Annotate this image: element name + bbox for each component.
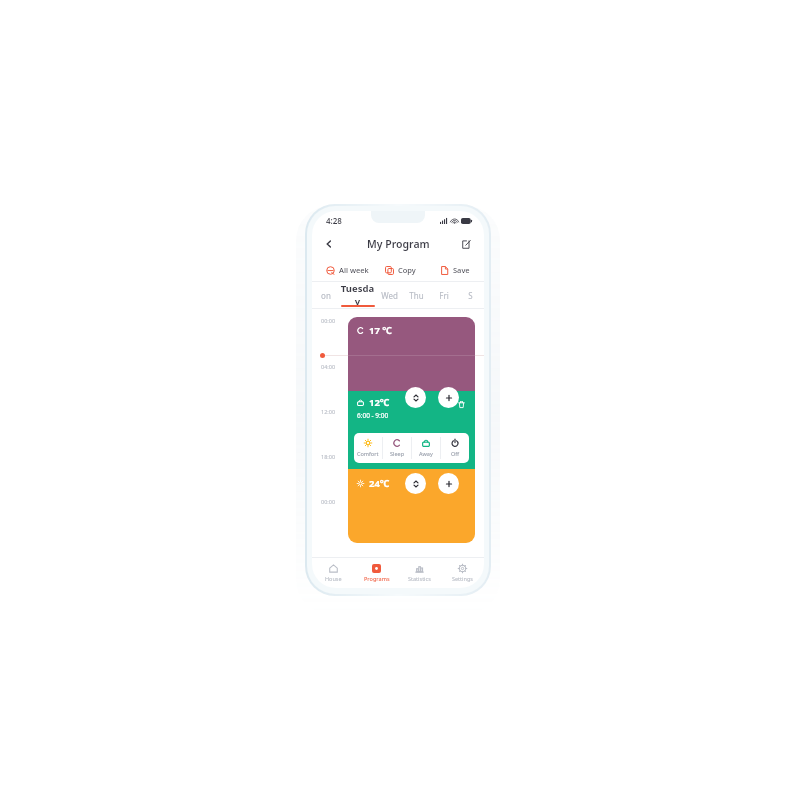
button[interactable]: Tuesday xyxy=(339,282,376,308)
button[interactable]: Programs xyxy=(355,558,398,588)
button[interactable]: on xyxy=(312,282,339,308)
button[interactable]: Adjust time xyxy=(405,473,426,494)
staticText: 12℃ xyxy=(369,396,390,409)
staticText: 18:00 xyxy=(321,453,336,460)
staticText: My Program xyxy=(367,237,430,251)
staticText: Sleep xyxy=(390,450,405,457)
staticText: 04:00 xyxy=(321,363,336,370)
button[interactable]: Add period xyxy=(438,473,459,494)
staticText: 17 ℃ xyxy=(369,324,392,337)
button[interactable]: Thu xyxy=(403,282,430,308)
button[interactable]: Away xyxy=(412,433,440,463)
staticText: Fri xyxy=(439,290,449,301)
button[interactable]: Comfort xyxy=(354,433,382,463)
staticText: Away xyxy=(419,450,433,457)
button[interactable]: All week xyxy=(324,263,371,277)
staticText: S xyxy=(468,290,473,301)
button[interactable]: Settings xyxy=(441,558,484,588)
button[interactable]: Wed xyxy=(376,282,403,308)
staticText: Statistics xyxy=(408,575,431,582)
staticText: 00:00 xyxy=(321,498,336,505)
button[interactable]: House xyxy=(312,558,355,588)
staticText: Settings xyxy=(452,575,473,582)
staticText: 6:00 - 9:00 xyxy=(357,411,389,420)
staticText: Wed xyxy=(381,290,398,301)
button[interactable]: Statistics xyxy=(398,558,441,588)
button[interactable]: Back xyxy=(318,233,340,255)
button[interactable]: Edit xyxy=(455,233,477,255)
staticText: 4:28 xyxy=(326,215,342,226)
button[interactable]: Copy xyxy=(383,263,418,277)
staticText: Comfort xyxy=(357,450,379,457)
button[interactable]: Off xyxy=(441,433,469,463)
staticText: House xyxy=(325,575,342,582)
button[interactable]: S xyxy=(457,282,484,308)
staticText: on xyxy=(321,290,331,301)
staticText: All week xyxy=(339,265,369,275)
button[interactable]: Save xyxy=(438,263,472,277)
button[interactable]: Fri xyxy=(430,282,457,308)
staticText: Thu xyxy=(409,290,424,301)
staticText: Save xyxy=(453,265,470,275)
staticText: Copy xyxy=(398,265,416,275)
button[interactable]: Add period xyxy=(438,387,459,408)
button[interactable]: Delete xyxy=(455,398,467,410)
button[interactable]: Sleep xyxy=(383,433,411,463)
staticText: Off xyxy=(451,450,460,457)
staticText: 12:00 xyxy=(321,408,336,415)
staticText: Programs xyxy=(364,575,390,582)
staticText: 00:00 xyxy=(321,317,336,324)
staticText: 24℃ xyxy=(369,477,390,490)
staticText: Tuesday xyxy=(339,282,376,308)
button[interactable]: Adjust time xyxy=(405,387,426,408)
